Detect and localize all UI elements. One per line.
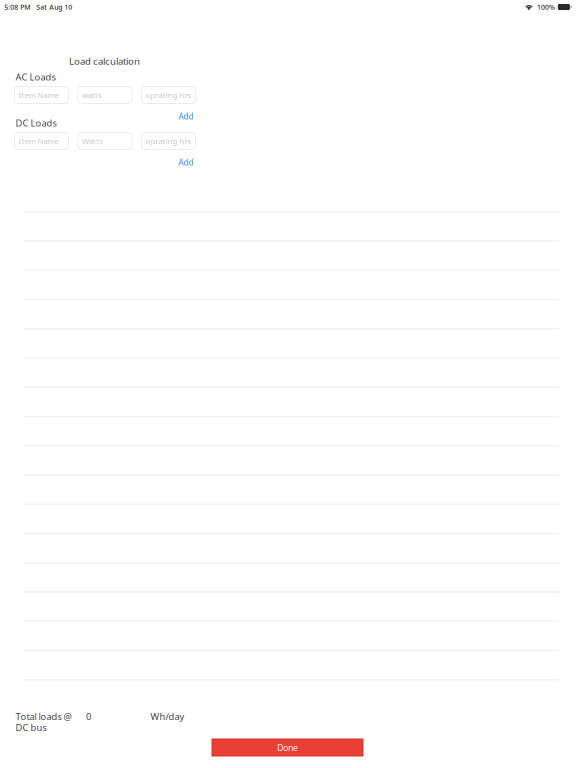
staticText: Add — [178, 157, 193, 168]
staticText: 0 — [86, 710, 91, 723]
staticText: 100% — [537, 2, 555, 12]
button[interactable]: watts — [78, 86, 132, 103]
button[interactable]: Add — [177, 157, 195, 167]
staticText: Done — [277, 741, 298, 753]
staticText: Item Name — [18, 136, 58, 146]
staticText: Load calculation — [69, 54, 140, 68]
staticText: Item Name — [18, 90, 58, 100]
staticText: AC Loads — [15, 70, 55, 83]
button[interactable]: oprating hrs — [141, 132, 195, 149]
staticText: watts — [82, 90, 102, 100]
button[interactable]: Item Name — [14, 86, 68, 103]
staticText: DC bus — [15, 721, 46, 734]
staticText: Sat Aug 10 — [36, 2, 72, 12]
staticText: Total loads @ — [15, 710, 71, 723]
button[interactable]: Done — [212, 739, 363, 756]
button[interactable]: oprating hrs — [141, 86, 195, 103]
staticText: 5:08 PM — [4, 2, 30, 12]
staticText: oprating hrs — [145, 90, 191, 100]
staticText: oprating hrs — [145, 136, 191, 146]
staticText: Watts — [82, 136, 103, 146]
staticText: Add — [178, 111, 193, 122]
button[interactable]: Add — [177, 111, 195, 121]
staticText: Wh/day — [150, 710, 184, 723]
button[interactable]: Watts — [78, 132, 132, 149]
button[interactable]: Item Name — [14, 132, 68, 149]
staticText: DC Loads — [15, 116, 56, 129]
